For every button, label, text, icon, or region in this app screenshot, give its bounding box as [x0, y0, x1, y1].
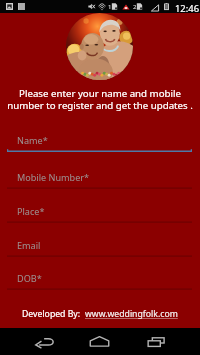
- staticText: Mobile Number*: [17, 171, 90, 183]
- staticText: Please enter your name and mobile number…: [4, 87, 196, 112]
- button[interactable]: Back: [30, 330, 59, 353]
- button[interactable]: Recent apps: [142, 330, 171, 353]
- button[interactable]: Email: [0, 235, 200, 258]
- staticText: Place*: [17, 205, 45, 217]
- staticText: 1: [108, 3, 112, 11]
- staticText: Name*: [17, 134, 48, 146]
- button[interactable]: Mobile Number*: [0, 167, 200, 190]
- button[interactable]: Profile photo: [66, 13, 133, 80]
- button[interactable]: Place*: [0, 201, 200, 224]
- staticText: 12:46: [175, 2, 200, 15]
- staticText: Email: [17, 239, 41, 251]
- button[interactable]: Home: [85, 330, 114, 353]
- button[interactable]: www.weddingfolk.com: [85, 308, 178, 320]
- staticText: Developed By:: [22, 308, 81, 320]
- staticText: 2: [133, 3, 137, 11]
- button[interactable]: DOB*: [0, 268, 200, 291]
- staticText: DOB*: [17, 272, 42, 284]
- button[interactable]: Name*: [0, 130, 200, 153]
